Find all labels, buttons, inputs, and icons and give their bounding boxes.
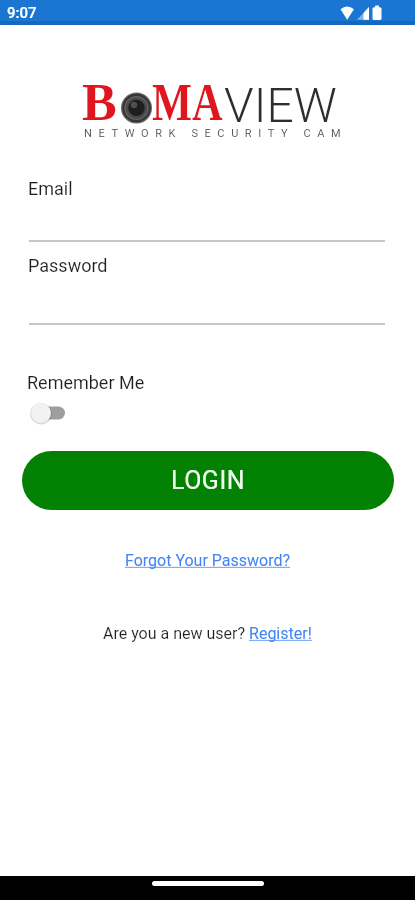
staticText: Are you a new user? Register!: [103, 624, 312, 643]
button[interactable]: [28, 400, 68, 426]
staticText: 9:07: [7, 4, 37, 22]
staticText: Forgot Your Password?: [125, 551, 291, 570]
staticText: B: [82, 74, 117, 132]
button[interactable]: LOGIN: [22, 451, 394, 510]
staticText: LOGIN: [171, 466, 246, 495]
staticText: MA: [152, 74, 223, 132]
staticText: Email: [28, 178, 73, 199]
button[interactable]: Forgot Your Password?: [125, 551, 291, 570]
staticText: Remember Me: [27, 372, 145, 393]
staticText: Password: [28, 255, 108, 276]
staticText: NETWORK SECURITY CAM: [84, 127, 348, 140]
button[interactable]: Are you a new user? Register!: [103, 624, 312, 643]
staticText: VIEW: [224, 77, 337, 133]
